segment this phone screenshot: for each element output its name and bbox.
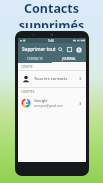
staticText: Google <box>34 98 48 103</box>
staticText: 9:46 <box>48 39 54 43</box>
staticText: Supprimer tout <box>22 46 56 52</box>
staticText: anonyme@gmail.com <box>34 104 63 108</box>
staticText: COMPTE <box>21 65 33 69</box>
staticText: Contacts supprimés <box>0 0 103 28</box>
staticText: Tous les contacts <box>34 76 68 82</box>
button[interactable]: Google <box>18 95 86 111</box>
staticText: CONTACTS <box>27 57 43 61</box>
button[interactable]: Tous les contacts <box>18 71 86 87</box>
button[interactable]: More options <box>74 45 83 54</box>
button[interactable]: CONTACTS <box>18 55 52 62</box>
button[interactable]: Search <box>56 45 65 54</box>
staticText: COMPTES <box>21 90 35 94</box>
staticText: 3 <box>79 76 82 82</box>
button[interactable]: Select <box>65 45 74 54</box>
staticText: 3 <box>79 101 82 106</box>
button[interactable]: JOURNAL <box>52 55 86 62</box>
staticText: JOURNAL <box>62 57 76 61</box>
